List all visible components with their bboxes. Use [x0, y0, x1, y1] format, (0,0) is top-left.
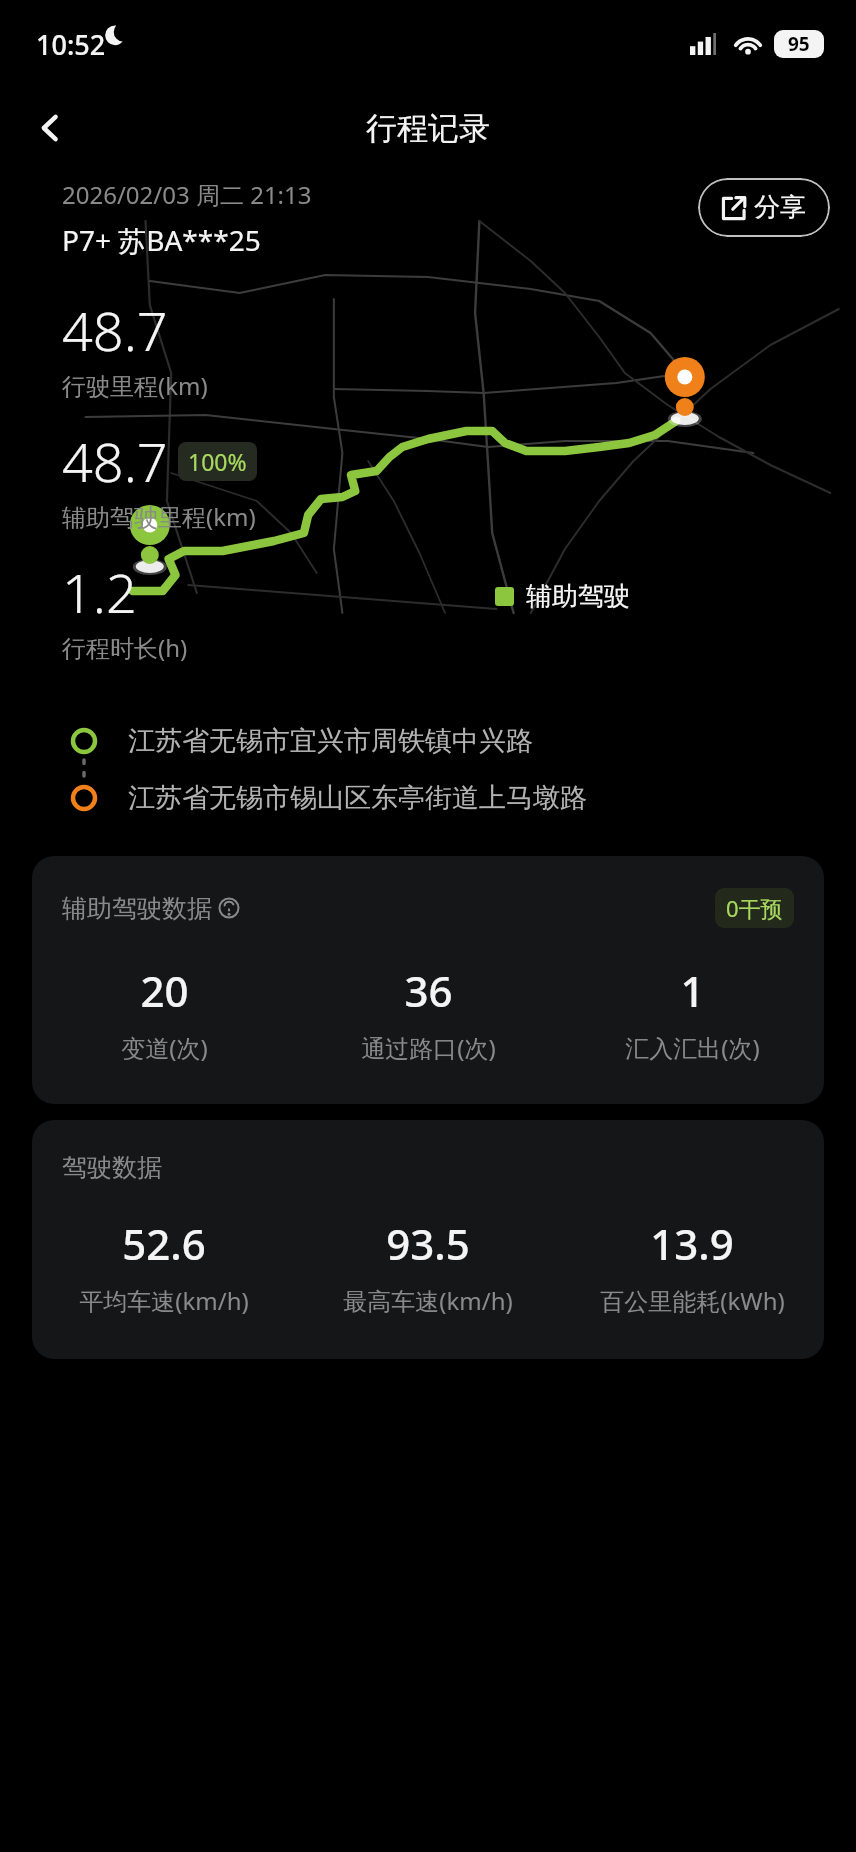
- staticText: 辅助驾驶数据: [62, 893, 212, 924]
- button[interactable]: 辅助驾驶数据: [32, 856, 824, 1104]
- staticText: P7+ 苏BA***25: [62, 221, 261, 259]
- staticText: 通过路口(次): [361, 1031, 496, 1064]
- button[interactable]: 分享: [698, 178, 830, 237]
- staticText: 平均车速(km/h): [79, 1284, 249, 1317]
- button[interactable]: 江苏省无锡市锡山区东亭街道上马墩路: [128, 781, 856, 815]
- staticText: 最高车速(km/h): [343, 1284, 513, 1317]
- staticText: 48.7: [62, 293, 168, 367]
- staticText: 百公里能耗(kWh): [600, 1284, 785, 1317]
- staticText: 2026/02/03 周二 21:13: [62, 178, 312, 211]
- staticText: 48.7: [62, 424, 168, 498]
- staticText: 95: [788, 31, 810, 57]
- staticText: 汇入汇出(次): [625, 1031, 760, 1064]
- staticText: 辅助驾驶: [526, 580, 630, 613]
- staticText: 行驶里程(km): [62, 369, 208, 402]
- staticText: 13.9: [650, 1215, 734, 1272]
- staticText: 江苏省无锡市锡山区东亭街道上马墩路: [128, 781, 587, 815]
- staticText: 江苏省无锡市宜兴市周铁镇中兴路: [128, 724, 533, 758]
- button[interactable]: Back: [20, 98, 80, 158]
- staticText: 行程时长(h): [62, 631, 188, 664]
- staticText: 辅助驾驶里程(km): [62, 500, 256, 533]
- button[interactable]: 驾驶数据: [32, 1120, 824, 1359]
- staticText: 1: [680, 962, 705, 1019]
- staticText: 93.5: [386, 1215, 470, 1272]
- button[interactable]: 江苏省无锡市宜兴市周铁镇中兴路: [128, 724, 856, 758]
- staticText: 52.6: [122, 1215, 206, 1272]
- staticText: 分享: [754, 191, 806, 224]
- staticText: 变道(次): [121, 1031, 208, 1064]
- staticText: 0干预: [726, 893, 783, 923]
- staticText: 10:52: [36, 26, 106, 63]
- staticText: 20: [140, 962, 189, 1019]
- staticText: 36: [404, 962, 453, 1019]
- staticText: 1.2: [62, 555, 137, 629]
- staticText: 行程记录: [366, 109, 490, 148]
- staticText: 100%: [188, 446, 247, 477]
- staticText: 驾驶数据: [62, 1152, 162, 1183]
